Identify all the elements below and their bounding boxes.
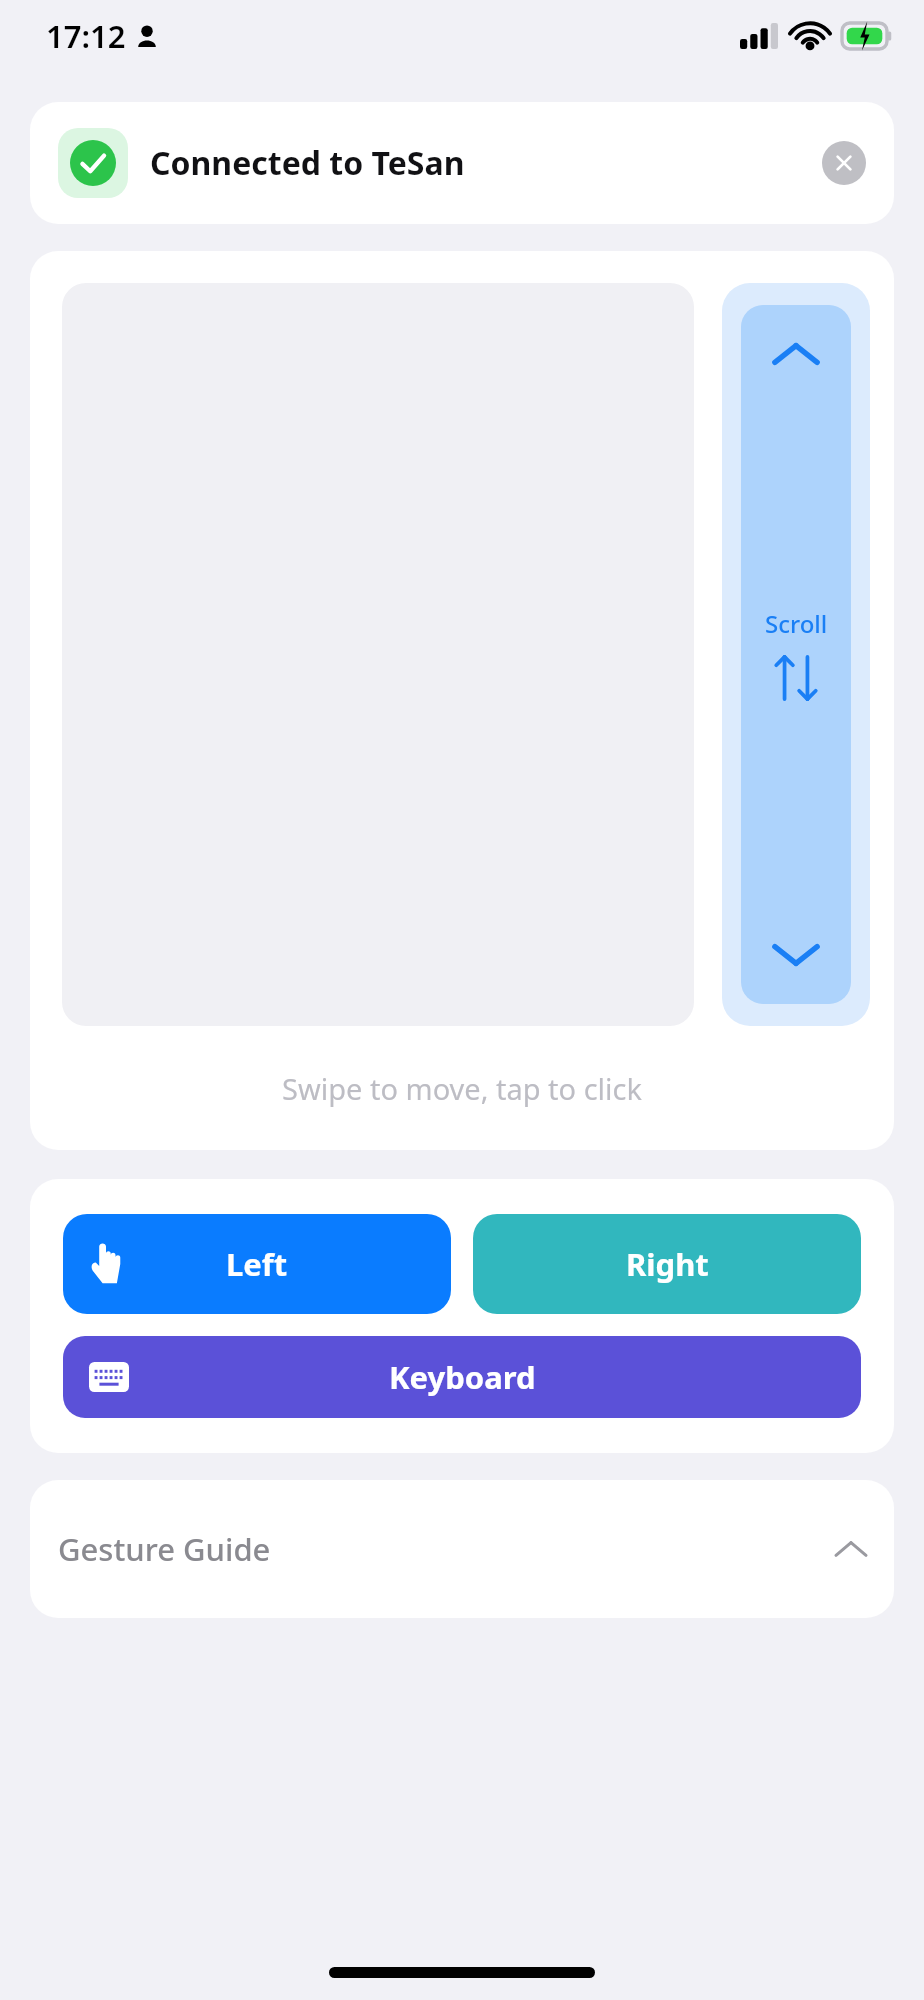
staticText: Right	[626, 1243, 709, 1285]
staticText: Scroll	[765, 607, 828, 640]
staticText: Keyboard	[389, 1356, 536, 1398]
staticText: Left	[226, 1243, 288, 1285]
button[interactable]: Dismiss	[822, 141, 866, 185]
staticText: Gesture Guide	[58, 1528, 271, 1570]
button[interactable]: Gesture Guide	[30, 1480, 894, 1618]
button[interactable]: Scroll	[722, 283, 870, 1026]
button[interactable]: Connected to TeSan	[30, 102, 894, 224]
button[interactable]: Right	[473, 1214, 861, 1314]
button[interactable]: Left	[63, 1214, 451, 1314]
button[interactable]: Keyboard	[63, 1336, 861, 1418]
staticText: Swipe to move, tap to click	[282, 1069, 642, 1108]
staticText: Connected to TeSan	[150, 141, 465, 185]
staticText: 17:12	[46, 15, 126, 57]
